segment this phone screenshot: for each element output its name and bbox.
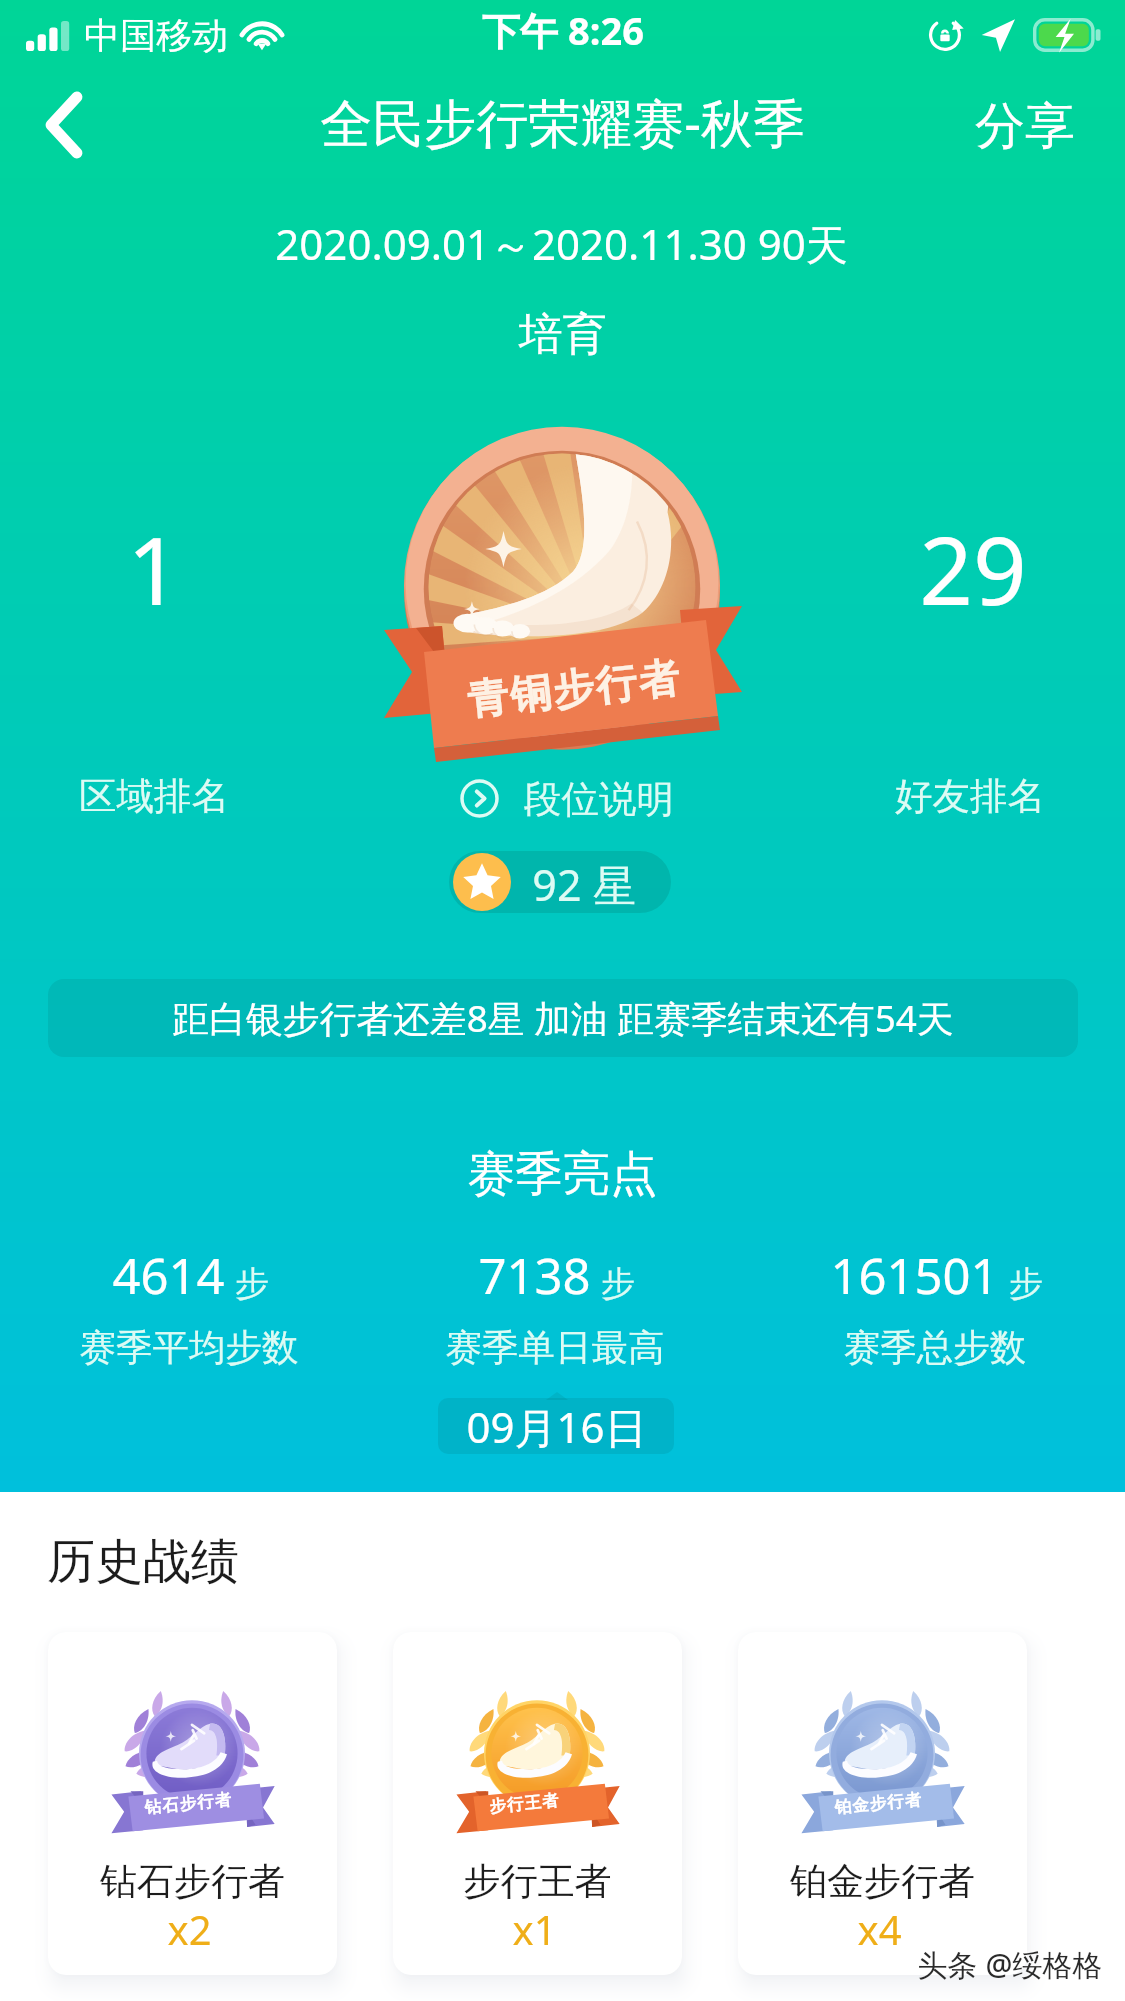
staticText: 头条 @绥格格: [860, 1944, 1125, 1985]
button[interactable]: 钻石步行者: [48, 1632, 337, 1975]
staticText: 距白银步行者还差8星 加油 距赛季结束还有54天: [172, 993, 954, 1043]
staticText: 赛季亮点: [0, 1144, 1125, 1204]
staticText: x2: [48, 1902, 334, 1956]
staticText: 下午 8:26: [482, 4, 644, 56]
staticText: x4: [738, 1902, 1024, 1956]
staticText: 培育: [0, 307, 1125, 362]
staticText: 段位说明: [524, 776, 674, 823]
staticText: 赛季总步数: [735, 1325, 1125, 1371]
staticText: 钻石步行者: [143, 1789, 233, 1818]
staticText: 161501: [830, 1242, 999, 1309]
staticText: 赛季平均步数: [0, 1325, 389, 1371]
staticText: 分享: [975, 95, 1075, 158]
staticText: 铂金步行者: [738, 1858, 1027, 1905]
button[interactable]: 铂金步行者: [738, 1632, 1027, 1975]
staticText: 钻石步行者: [48, 1858, 337, 1905]
staticText: 09月16日: [466, 1398, 647, 1454]
button[interactable]: 步行王者: [393, 1632, 682, 1975]
staticText: 铂金步行者: [833, 1789, 923, 1818]
staticText: 青铜步行者: [464, 652, 683, 728]
staticText: 全民步行荣耀赛-秋季: [0, 86, 1125, 157]
staticText: 1: [4, 505, 304, 633]
staticText: 步行王者: [488, 1790, 561, 1817]
staticText: 29: [823, 505, 1123, 633]
staticText: 7138: [478, 1242, 591, 1309]
staticText: 步行王者: [393, 1858, 682, 1905]
staticText: 步: [1009, 1262, 1043, 1305]
staticText: 好友排名: [820, 773, 1120, 820]
staticText: 2020.09.01～2020.11.30 90天: [0, 215, 1124, 272]
staticText: 赛季单日最高: [355, 1325, 755, 1371]
button[interactable]: 段位说明: [460, 772, 674, 824]
staticText: 区域排名: [4, 773, 304, 820]
staticText: 历史战绩: [47, 1532, 239, 1592]
staticText: 步: [235, 1262, 269, 1305]
staticText: 中国移动: [84, 13, 228, 58]
button[interactable]: 分享: [951, 80, 1099, 172]
button[interactable]: 92 星: [449, 851, 671, 913]
staticText: 步: [601, 1262, 635, 1305]
staticText: x1: [393, 1902, 679, 1956]
button[interactable]: Back: [7, 78, 121, 172]
staticText: 4614: [112, 1242, 225, 1309]
staticText: 92 星: [532, 855, 636, 913]
